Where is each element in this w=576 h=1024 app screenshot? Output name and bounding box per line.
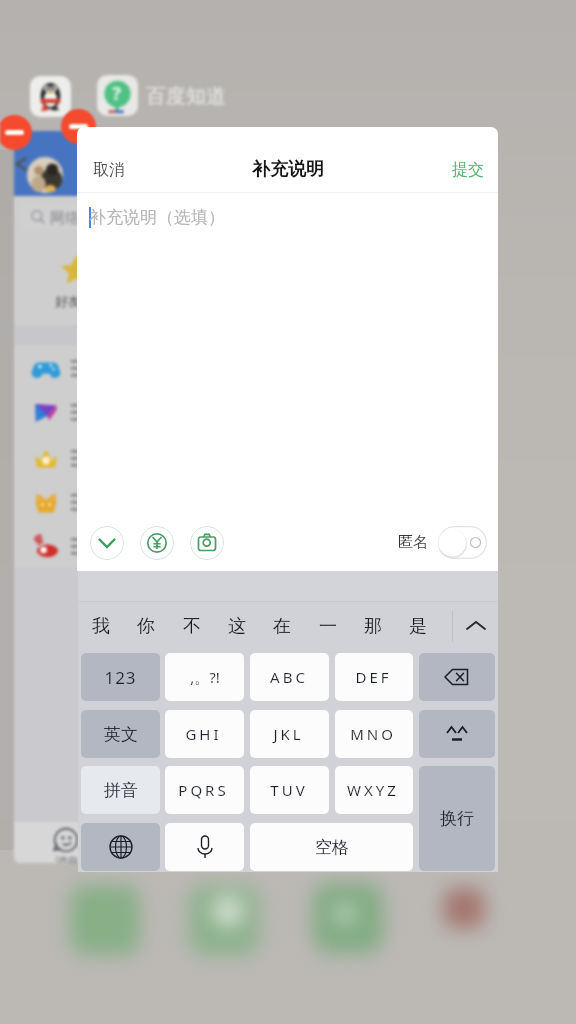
button[interactable]: 不 <box>171 602 212 650</box>
staticText: PQRS <box>178 780 229 800</box>
button[interactable]: 提交 <box>452 160 484 180</box>
staticText: 补充说明（选填） <box>89 207 225 228</box>
button[interactable]: Camera <box>190 526 224 560</box>
button[interactable]: 换行 <box>419 766 495 871</box>
staticText: 提交 <box>452 160 484 180</box>
button[interactable]: 补充说明（选填） <box>77 193 498 524</box>
button[interactable]: 取消 <box>93 160 125 180</box>
staticText: 一 <box>319 615 337 638</box>
staticText: 那 <box>364 615 382 638</box>
staticText: GHI <box>185 724 222 744</box>
staticText: ? <box>112 81 121 106</box>
button[interactable]: Switch input method <box>81 823 160 871</box>
button[interactable]: 你 <box>125 602 166 650</box>
button[interactable]: 空格 <box>250 823 413 871</box>
staticText: JKL <box>273 724 304 744</box>
button[interactable]: 123 <box>81 653 160 701</box>
button[interactable]: 一 <box>307 602 348 650</box>
button[interactable]: 这 <box>216 602 257 650</box>
staticText: TUV <box>270 780 308 800</box>
button[interactable]: Anonymous toggle <box>438 526 487 559</box>
staticText: 补充说明 <box>252 158 324 181</box>
button[interactable]: ABC <box>250 653 329 701</box>
button[interactable]: MNO <box>335 710 413 758</box>
staticText: ,。?! <box>190 667 220 687</box>
button[interactable]: PQRS <box>165 766 244 814</box>
button[interactable]: 英文 <box>81 710 160 758</box>
button[interactable]: Reward <box>140 526 174 560</box>
staticText: 匿名 <box>398 533 428 552</box>
staticText: 123 <box>104 666 137 689</box>
button[interactable]: 是 <box>397 602 438 650</box>
staticText: 我 <box>92 615 110 638</box>
staticText: 这 <box>228 615 246 638</box>
button[interactable]: Collapse keyboard <box>90 526 124 560</box>
button[interactable]: TUV <box>250 766 329 814</box>
button[interactable]: Remove task <box>61 109 96 144</box>
staticText: 拼音 <box>104 780 138 801</box>
button[interactable]: 那 <box>352 602 393 650</box>
staticText: 换行 <box>440 808 474 829</box>
staticText: 百度知道 <box>146 84 226 109</box>
staticText: 取消 <box>93 160 125 180</box>
button[interactable]: Remove task <box>0 115 32 150</box>
staticText: 不 <box>183 615 201 638</box>
staticText: 网络 <box>50 209 80 228</box>
button[interactable]: WXYZ <box>335 766 413 814</box>
staticText: 你 <box>137 615 155 638</box>
button[interactable]: 拼音 <box>81 766 160 814</box>
staticText: MNO <box>350 724 396 744</box>
button[interactable]: GHI <box>165 710 244 758</box>
staticText: 好友 <box>55 293 81 309</box>
staticText: 空格 <box>315 837 349 858</box>
button[interactable]: JKL <box>250 710 329 758</box>
staticText: 是 <box>409 615 427 638</box>
staticText: 消息 <box>55 854 79 863</box>
staticText: DEF <box>355 667 392 687</box>
staticText: WXYZ <box>347 780 399 800</box>
button[interactable]: DEF <box>335 653 413 701</box>
button[interactable]: Backspace <box>419 653 495 701</box>
button[interactable]: ,。?! <box>165 653 244 701</box>
button[interactable]: Voice input <box>165 823 244 871</box>
button[interactable]: 在 <box>261 602 302 650</box>
button[interactable]: Expand candidates <box>453 602 498 650</box>
button[interactable]: Emoticons <box>419 710 495 758</box>
staticText: 英文 <box>104 724 138 745</box>
staticText: 在 <box>273 615 291 638</box>
button[interactable]: 我 <box>80 602 121 650</box>
staticText: ABC <box>270 667 308 687</box>
